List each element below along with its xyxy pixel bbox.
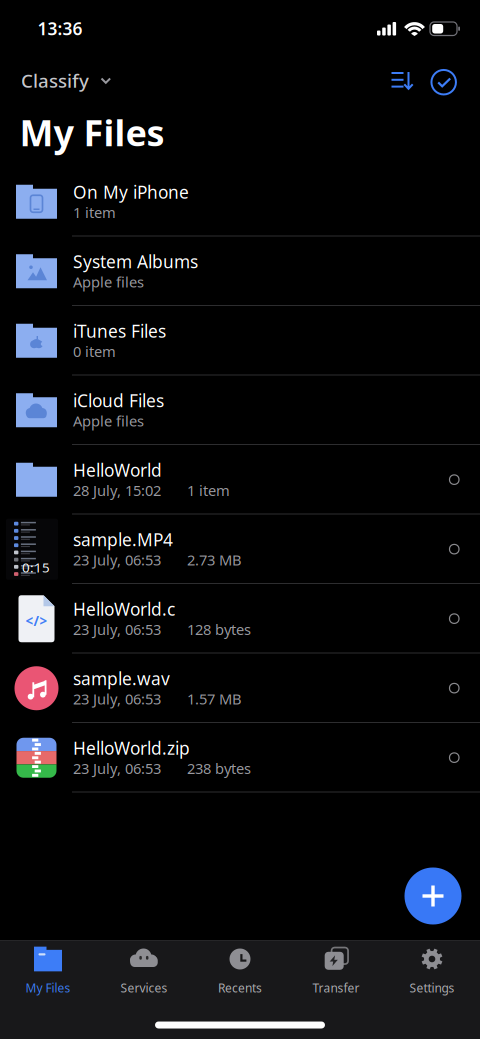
staticText: Apple files <box>73 411 144 430</box>
staticText: iCloud Files <box>73 389 164 412</box>
button[interactable]: HelloWorld.zip <box>0 723 480 792</box>
staticText: 238 bytes <box>187 758 251 778</box>
staticText: System Albums <box>73 250 198 273</box>
staticText: 2.73 MB <box>187 550 242 569</box>
staticText: 128 bytes <box>187 619 251 639</box>
staticText: Settings <box>409 980 454 996</box>
staticText: Services <box>120 980 167 996</box>
staticText: iTunes Files <box>73 319 166 342</box>
staticText: Apple files <box>73 272 144 291</box>
button[interactable]: Services <box>96 947 192 996</box>
staticText: Classify <box>21 68 89 93</box>
staticText: HelloWorld.zip <box>73 736 190 759</box>
button[interactable]: System Albums <box>0 236 480 306</box>
button[interactable]: 0:15 <box>0 514 480 584</box>
button[interactable]: </> <box>0 584 480 653</box>
button[interactable]: Select <box>429 67 459 97</box>
staticText: 0:15 <box>22 558 50 576</box>
staticText: HelloWorld <box>73 458 162 481</box>
staticText: 0 item <box>73 341 116 361</box>
staticText: My Files <box>25 980 70 996</box>
staticText: 13:36 <box>37 17 82 40</box>
button[interactable]: Settings <box>384 947 480 996</box>
staticText: HelloWorld.c <box>73 597 175 620</box>
button[interactable]: Sort <box>387 66 417 96</box>
button[interactable]: Recents <box>192 947 288 996</box>
staticText: </> <box>25 612 47 630</box>
staticText: Transfer <box>312 980 359 996</box>
button[interactable]: My Files <box>0 947 96 996</box>
button[interactable]: Add <box>404 867 461 924</box>
staticText: 1 item <box>73 202 116 222</box>
staticText: 28 July, 15:02 <box>73 480 161 500</box>
staticText: 1.57 MB <box>187 689 242 708</box>
staticText: 23 July, 06:53 <box>73 689 161 708</box>
button[interactable]: iTunes Files <box>0 306 480 375</box>
button[interactable]: Transfer <box>288 947 384 996</box>
staticText: 23 July, 06:53 <box>73 619 161 639</box>
button[interactable]: sample.wav <box>0 653 480 723</box>
staticText: sample.MP4 <box>73 528 173 551</box>
button[interactable]: Classify <box>0 60 125 94</box>
button[interactable] <box>0 445 480 514</box>
staticText: On My iPhone <box>73 180 189 203</box>
button[interactable]: On My iPhone <box>0 167 480 236</box>
staticText: Recents <box>218 980 262 996</box>
staticText: 1 item <box>187 480 230 500</box>
staticText: 23 July, 06:53 <box>73 758 161 778</box>
staticText: 23 July, 06:53 <box>73 550 161 569</box>
staticText: My Files <box>19 108 164 156</box>
staticText: sample.wav <box>73 667 170 690</box>
button[interactable]: iCloud Files <box>0 375 480 445</box>
